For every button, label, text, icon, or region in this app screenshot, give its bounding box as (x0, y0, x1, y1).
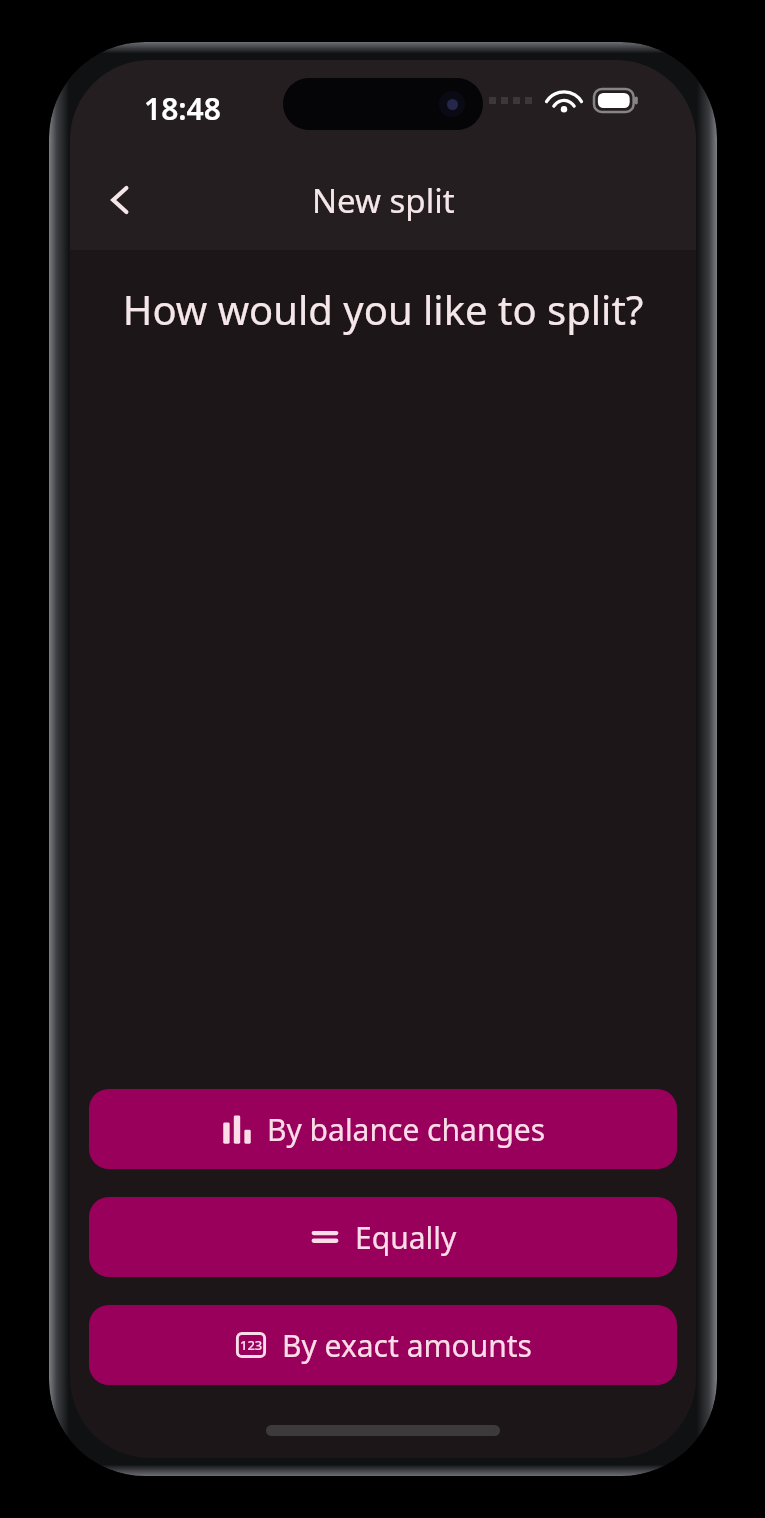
button[interactable]: Back (88, 168, 152, 232)
staticText: New split (312, 178, 455, 223)
button[interactable]: By balance changes (89, 1089, 677, 1169)
staticText: By exact amounts (282, 1325, 532, 1366)
button[interactable]: 123 (89, 1305, 677, 1385)
button[interactable]: Equally (89, 1197, 677, 1277)
staticText: 123 (240, 1336, 263, 1354)
staticText: How would you like to split? (94, 282, 672, 336)
staticText: Equally (355, 1217, 457, 1258)
staticText: By balance changes (267, 1109, 546, 1150)
staticText: 18:48 (144, 88, 221, 129)
